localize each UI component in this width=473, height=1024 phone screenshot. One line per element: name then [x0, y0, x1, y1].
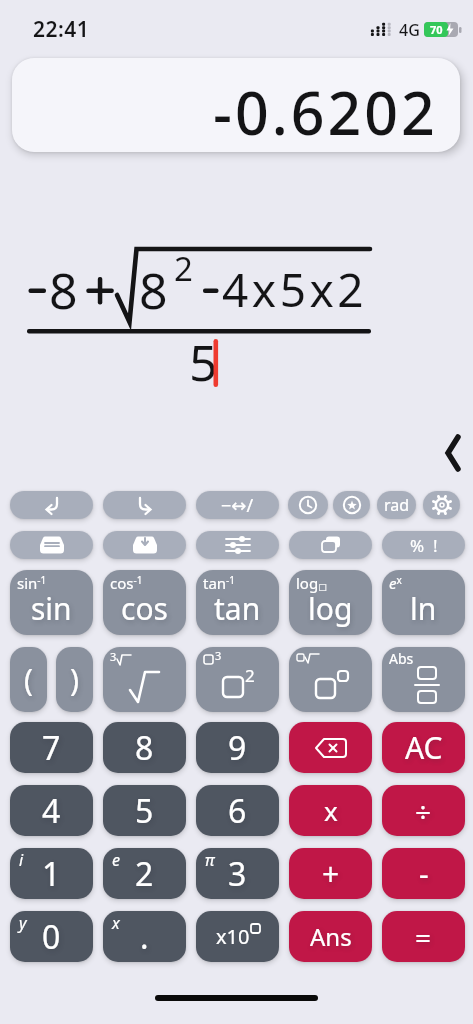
button[interactable] [103, 491, 186, 519]
button[interactable]: tan-1 [196, 570, 279, 635]
staticText: ln [410, 588, 437, 629]
button[interactable]: 4 [10, 785, 93, 836]
staticText: x [324, 793, 338, 828]
staticText: 2 [135, 852, 154, 896]
staticText: log [308, 588, 353, 629]
staticText: log□ [296, 573, 327, 593]
staticText: π [205, 849, 215, 871]
staticText: % ! [410, 534, 438, 557]
button[interactable] [289, 531, 372, 559]
staticText: 70 [430, 22, 443, 37]
button[interactable]: 6 [196, 785, 279, 836]
staticText: + [322, 853, 340, 894]
staticText: 4x5x2 [222, 258, 368, 321]
button[interactable]: ÷ [382, 785, 465, 836]
staticText: 7 [42, 726, 61, 770]
staticText: tan [214, 588, 261, 629]
staticText: cos-1 [110, 573, 143, 593]
button[interactable] [10, 531, 93, 559]
button[interactable]: i [10, 848, 93, 899]
staticText: AC [405, 727, 443, 768]
button[interactable]: π [196, 848, 279, 899]
staticText: 3 [110, 649, 117, 664]
button[interactable]: 5 [103, 785, 186, 836]
button[interactable]: ) [56, 647, 93, 712]
staticText: 3 [215, 648, 222, 663]
staticText: 4 [42, 789, 61, 833]
staticText: ( [24, 659, 33, 700]
button[interactable]: Abs [382, 647, 465, 712]
button[interactable]: % ! [382, 531, 465, 559]
button[interactable] [289, 647, 372, 712]
staticText: 0 [42, 915, 61, 959]
button[interactable]: 3 [196, 647, 279, 712]
staticText: x10 [216, 923, 250, 950]
staticText: 5 [189, 328, 218, 396]
button[interactable]: e [103, 848, 186, 899]
staticText: Ans [310, 920, 352, 953]
button[interactable] [10, 491, 93, 519]
button[interactable]: x [103, 911, 186, 962]
staticText: 1 [42, 852, 61, 896]
staticText: tan-1 [203, 573, 236, 593]
button[interactable]: = [382, 911, 465, 962]
button[interactable] [103, 531, 186, 559]
button[interactable]: 3 [103, 647, 186, 712]
button[interactable] [288, 491, 328, 519]
button[interactable]: x [289, 785, 372, 836]
staticText: sin [31, 588, 72, 629]
staticText: y [19, 912, 27, 934]
staticText: 9 [228, 726, 247, 770]
staticText: 2 [174, 246, 193, 291]
staticText: ex [389, 573, 402, 593]
button[interactable] [333, 491, 370, 519]
staticText: ) [70, 659, 79, 700]
button[interactable]: −↔/ [196, 491, 279, 519]
staticText: x [112, 912, 120, 934]
staticText: 22:41 [33, 15, 90, 44]
button[interactable] [423, 491, 460, 519]
button[interactable]: log□ [289, 570, 372, 635]
button[interactable]: y [10, 911, 93, 962]
button[interactable]: x10 [196, 911, 279, 962]
staticText: ÷ [415, 792, 432, 830]
staticText: - [419, 853, 429, 894]
button[interactable] [196, 531, 279, 559]
button[interactable]: - [382, 848, 465, 899]
button[interactable]: AC [382, 722, 465, 773]
staticText: 3 [228, 852, 247, 896]
button[interactable]: cos-1 [103, 570, 186, 635]
button[interactable]: + [289, 848, 372, 899]
staticText: -0.6202 [213, 72, 438, 152]
staticText: . [140, 915, 149, 959]
staticText: 8 [139, 256, 168, 324]
button[interactable]: rad [377, 491, 416, 519]
button[interactable]: ex [382, 570, 465, 635]
button[interactable] [289, 722, 372, 773]
staticText: 8 [49, 256, 78, 324]
button[interactable]: 9 [196, 722, 279, 773]
staticText: −↔/ [221, 493, 254, 518]
button[interactable]: 7 [10, 722, 93, 773]
staticText: = [415, 918, 432, 956]
staticText: i [19, 849, 24, 871]
staticText: 8 [135, 726, 154, 770]
staticText: 4G [399, 19, 420, 41]
staticText: 5 [135, 789, 154, 833]
staticText: cos [121, 588, 168, 629]
staticText: sin-1 [17, 573, 47, 593]
staticText: Abs [389, 649, 414, 668]
button[interactable]: 8 [103, 722, 186, 773]
staticText: e [112, 849, 120, 871]
staticText: rad [384, 494, 410, 516]
button[interactable]: ( [10, 647, 47, 712]
staticText: 2 [245, 664, 255, 687]
staticText: 6 [228, 789, 247, 833]
button[interactable]: Ans [289, 911, 372, 962]
button[interactable]: sin-1 [10, 570, 93, 635]
